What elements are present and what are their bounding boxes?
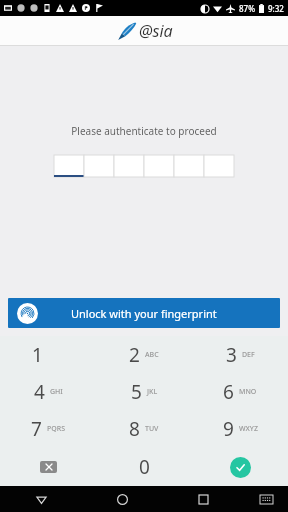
staticText: 9:32 bbox=[268, 3, 284, 14]
button[interactable]: 2 bbox=[96, 336, 192, 373]
button[interactable]: Recents bbox=[163, 486, 244, 512]
button[interactable]: Home bbox=[82, 486, 163, 512]
staticText: 4 bbox=[34, 379, 45, 405]
button[interactable]: 6 bbox=[192, 373, 288, 410]
staticText: 0 bbox=[139, 454, 150, 480]
staticText: 7 bbox=[31, 416, 42, 442]
staticText: JKL bbox=[147, 387, 158, 397]
staticText: WXYZ bbox=[239, 424, 258, 434]
button[interactable]: 9 bbox=[192, 410, 288, 448]
button[interactable]: 5 bbox=[96, 373, 192, 410]
staticText: MNO bbox=[239, 387, 257, 397]
staticText: @sia bbox=[139, 20, 173, 42]
staticText: ABC bbox=[145, 350, 159, 360]
staticText: 1 bbox=[32, 342, 43, 368]
staticText: GHI bbox=[50, 387, 63, 397]
button[interactable]: Back bbox=[0, 486, 82, 512]
staticText: Please authenticate to proceed bbox=[71, 124, 217, 138]
staticText: 8 bbox=[129, 416, 140, 442]
staticText: 87% bbox=[239, 3, 255, 14]
button[interactable]: 4 bbox=[0, 373, 96, 410]
staticText: 5 bbox=[131, 379, 142, 405]
staticText: PQRS bbox=[47, 424, 66, 434]
staticText: DEF bbox=[242, 350, 255, 360]
button[interactable]: 0 bbox=[96, 448, 192, 486]
staticText: 6 bbox=[223, 379, 234, 405]
staticText: Unlock with your fingerprint bbox=[71, 306, 217, 321]
button[interactable] bbox=[114, 155, 144, 177]
button[interactable]: 3 bbox=[192, 336, 288, 373]
staticText: TUV bbox=[145, 424, 159, 434]
button[interactable] bbox=[204, 155, 234, 177]
staticText: 9 bbox=[223, 416, 234, 442]
button[interactable]: Switch keyboard bbox=[244, 486, 288, 512]
staticText: 2 bbox=[129, 342, 140, 368]
button[interactable]: 7 bbox=[0, 410, 96, 448]
staticText: 3 bbox=[226, 342, 237, 368]
button[interactable]: 8 bbox=[96, 410, 192, 448]
button[interactable] bbox=[174, 155, 204, 177]
button[interactable] bbox=[54, 155, 84, 177]
button[interactable] bbox=[144, 155, 174, 177]
button[interactable]: Unlock with your fingerprint bbox=[8, 298, 280, 328]
button[interactable] bbox=[84, 155, 114, 177]
button[interactable]: Confirm bbox=[192, 448, 288, 486]
button[interactable]: Backspace bbox=[0, 448, 96, 486]
button[interactable]: 1 bbox=[0, 336, 96, 373]
